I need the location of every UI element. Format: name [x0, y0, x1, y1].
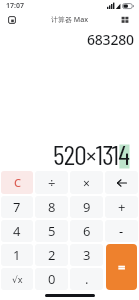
button[interactable] — [105, 171, 138, 194]
button[interactable]: 1 — [1, 244, 33, 266]
button[interactable]: 8 — [35, 196, 68, 218]
button[interactable] — [7, 15, 17, 25]
button[interactable]: √x — [1, 268, 33, 290]
button[interactable]: - — [105, 220, 138, 242]
staticText: - — [119, 222, 124, 240]
staticText: ÷ — [48, 174, 56, 192]
staticText: 9 — [83, 198, 91, 216]
staticText: 17:07 — [6, 1, 24, 11]
staticText: 7 — [13, 198, 21, 216]
button[interactable]: ÷ — [35, 171, 68, 194]
staticText: 0 — [48, 270, 56, 288]
button[interactable]: 4 — [1, 220, 33, 242]
staticText: C — [14, 175, 21, 190]
staticText: 683280 — [87, 30, 134, 49]
staticText: 520×1314 — [53, 137, 130, 171]
button[interactable]: 7 — [1, 196, 33, 218]
staticText: 计算器 Max — [51, 15, 89, 25]
staticText: √x — [12, 273, 23, 285]
button[interactable]: C — [1, 171, 33, 194]
staticText: × — [83, 175, 90, 191]
button[interactable]: = — [106, 244, 137, 290]
button[interactable]: . — [70, 268, 103, 290]
staticText: 5 — [48, 222, 56, 240]
staticText: 8 — [48, 198, 56, 216]
staticText: 4 — [13, 222, 21, 240]
staticText: 2 — [48, 246, 56, 264]
button[interactable]: + — [105, 196, 138, 218]
staticText: + — [118, 198, 126, 216]
staticText: 6 — [83, 222, 91, 240]
button[interactable]: × — [70, 171, 103, 194]
staticText: 3 — [83, 246, 91, 264]
staticText: = — [118, 258, 126, 276]
staticText: . — [85, 270, 89, 288]
button[interactable] — [120, 15, 130, 25]
button[interactable]: 2 — [35, 244, 68, 266]
button[interactable]: 5 — [35, 220, 68, 242]
button[interactable]: 6 — [70, 220, 103, 242]
staticText: 1 — [13, 246, 21, 264]
button[interactable]: 0 — [35, 268, 68, 290]
button[interactable]: 3 — [70, 244, 103, 266]
button[interactable]: 9 — [70, 196, 103, 218]
